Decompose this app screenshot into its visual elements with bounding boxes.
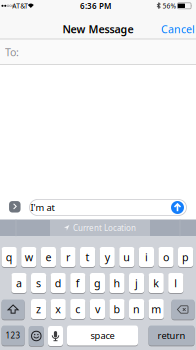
staticText: y [105, 250, 110, 264]
button[interactable]: y [100, 246, 115, 267]
button[interactable]: Cancel [161, 22, 195, 36]
button[interactable] [171, 201, 184, 214]
staticText: s [36, 276, 41, 290]
button[interactable]: g [90, 272, 105, 293]
staticText: 123 [6, 330, 21, 341]
staticText: To: [5, 45, 19, 59]
button[interactable] [171, 299, 194, 320]
staticText: e [45, 250, 51, 264]
staticText: return [157, 329, 185, 342]
staticText: 56% [163, 1, 177, 10]
button[interactable]: f [70, 272, 85, 293]
staticText: m [151, 302, 161, 316]
staticText: l [174, 276, 177, 290]
button[interactable]: l [168, 272, 183, 293]
button[interactable]: x [51, 298, 66, 319]
button[interactable] [48, 325, 63, 346]
button[interactable]: t [80, 246, 95, 267]
staticText: c [75, 302, 80, 316]
staticText: i [145, 250, 148, 264]
staticText: v [95, 302, 100, 316]
button[interactable]: o [158, 246, 174, 267]
staticText: o [163, 250, 169, 264]
button[interactable]: d [51, 272, 66, 293]
staticText: t [86, 250, 90, 264]
staticText: r [66, 250, 70, 264]
button[interactable]: h [109, 272, 125, 293]
button[interactable]: return [148, 325, 194, 346]
button[interactable]: Current Location [50, 220, 150, 236]
button[interactable]: k [149, 272, 164, 293]
button[interactable]: r [60, 246, 76, 267]
button[interactable]: e [41, 246, 56, 267]
button[interactable]: q [2, 246, 17, 267]
staticText: space [90, 329, 114, 342]
staticText: p [182, 250, 189, 264]
staticText: 6:36 PM [80, 0, 111, 11]
button[interactable]: a [11, 272, 27, 293]
button[interactable] [9, 201, 21, 213]
staticText: d [55, 276, 62, 290]
button[interactable] [29, 325, 44, 346]
button[interactable]: n [129, 298, 144, 319]
staticText: AT&T [12, 1, 28, 10]
button[interactable]: p [178, 246, 193, 267]
button[interactable]: i [139, 246, 154, 267]
button[interactable]: w [21, 246, 36, 267]
staticText: f [76, 276, 80, 290]
staticText: x [55, 302, 61, 316]
staticText: New Message [62, 22, 133, 36]
button[interactable] [2, 299, 25, 320]
staticText: j [135, 276, 138, 290]
button[interactable]: c [70, 298, 85, 319]
button[interactable]: space [67, 325, 138, 346]
staticText: Cancel [161, 22, 195, 36]
button[interactable]: m [149, 298, 164, 319]
staticText: n [133, 302, 140, 316]
button[interactable]: s [31, 272, 46, 293]
staticText: g [94, 276, 101, 290]
staticText: k [153, 276, 159, 290]
button[interactable]: u [119, 246, 134, 267]
staticText: I'm at [30, 201, 54, 213]
staticText: b [113, 302, 120, 316]
staticText: a [16, 276, 22, 290]
button[interactable]: 123 [2, 325, 25, 346]
staticText: z [36, 302, 41, 316]
button[interactable]: b [109, 298, 125, 319]
button[interactable]: j [129, 272, 144, 293]
staticText: u [123, 250, 130, 264]
staticText: Current Location [73, 223, 136, 233]
staticText: q [6, 250, 13, 264]
button[interactable]: z [31, 298, 46, 319]
staticText: w [25, 250, 33, 264]
staticText: h [113, 276, 120, 290]
button[interactable]: v [90, 298, 105, 319]
